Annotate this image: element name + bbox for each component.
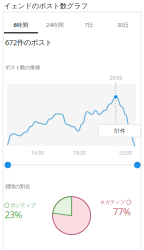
staticText: 51件 <box>114 127 125 134</box>
staticText: ネガティブ <box>100 199 125 205</box>
staticText: 77% <box>113 205 131 218</box>
staticText: イェンドのポスト数グラフ <box>4 1 88 10</box>
staticText: 7日 <box>84 21 93 29</box>
staticText: 20:30 <box>119 149 132 156</box>
staticText: 16:30 <box>31 149 44 156</box>
button[interactable]: イェンドのポスト数グラフ <box>4 1 88 10</box>
staticText: 20:00 <box>109 74 122 81</box>
button[interactable]: 6時間 <box>4 21 38 33</box>
button[interactable]: 24時間 <box>38 21 72 33</box>
button[interactable]: Range end <box>134 162 141 168</box>
staticText: 23% <box>4 208 22 221</box>
button[interactable]: 7日 <box>72 21 106 33</box>
staticText: ポスト数の推移 <box>5 64 40 71</box>
staticText: 感情の割合 <box>5 183 30 190</box>
button[interactable]: Range start <box>4 162 11 168</box>
staticText: ポジティブ <box>10 202 35 208</box>
staticText: 30日 <box>117 21 129 29</box>
staticText: 24時間 <box>46 21 64 29</box>
button[interactable]: 30日 <box>106 21 140 33</box>
staticText: 6時間 <box>13 21 28 29</box>
staticText: 18:30 <box>73 149 86 156</box>
staticText: 672件のポスト <box>5 37 52 47</box>
